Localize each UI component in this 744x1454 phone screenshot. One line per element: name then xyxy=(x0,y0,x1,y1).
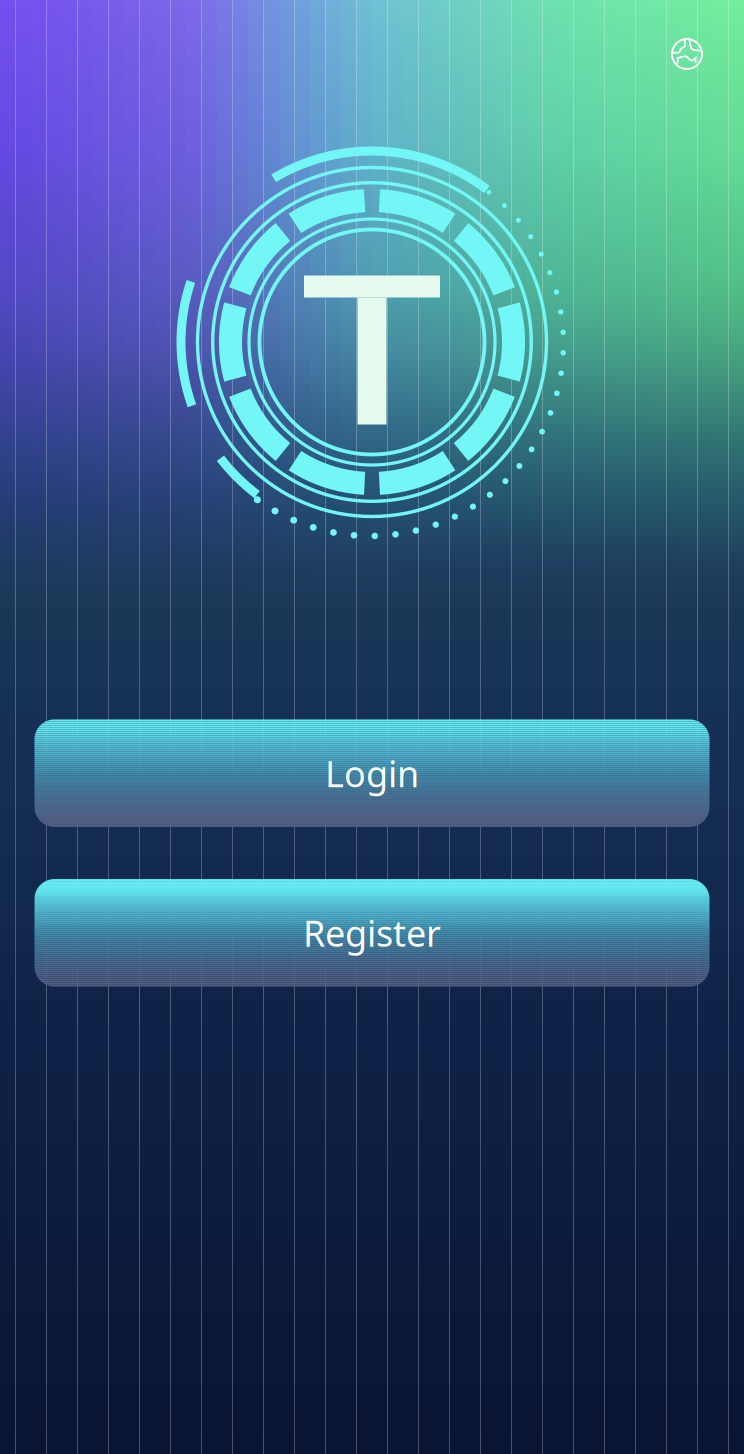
button[interactable]: Login xyxy=(34,719,709,827)
staticText: Login xyxy=(325,749,419,797)
staticText: Register xyxy=(303,909,441,957)
button[interactable]: Change language xyxy=(657,24,717,84)
button[interactable]: Register xyxy=(34,879,709,986)
